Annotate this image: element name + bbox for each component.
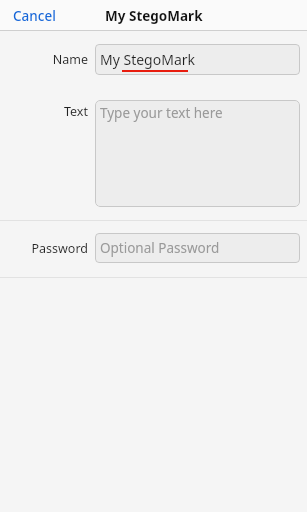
button[interactable]: My StegoMark (95, 44, 300, 75)
button[interactable]: Optional Password (95, 233, 300, 263)
staticText: Optional Password (100, 239, 220, 257)
staticText: My StegoMark (100, 50, 196, 69)
staticText: Text (63, 103, 88, 120)
staticText: Type your text here (100, 104, 223, 122)
staticText: My StegoMark (105, 7, 203, 25)
button[interactable]: Cancel (0, 3, 64, 29)
staticText: Password (31, 240, 88, 257)
button[interactable]: Type your text here (95, 100, 300, 207)
staticText: Name (52, 51, 88, 68)
